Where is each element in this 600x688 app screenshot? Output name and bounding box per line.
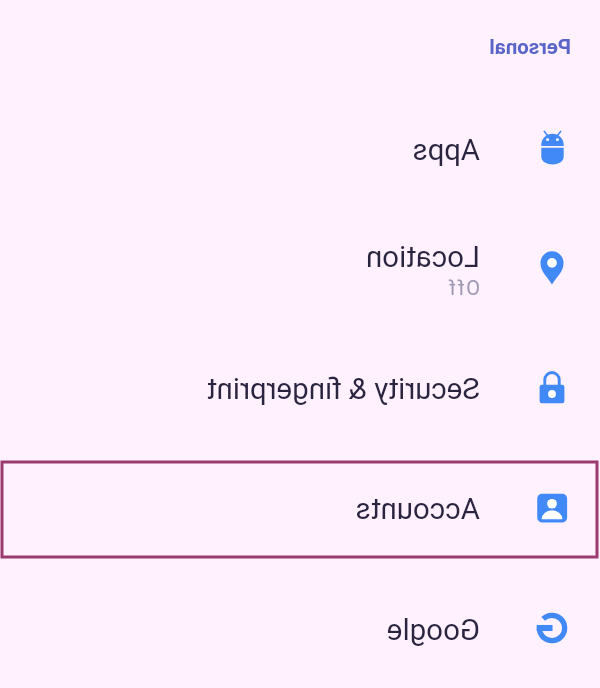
button[interactable]: Security and fingerprint: [0, 343, 600, 431]
other: Accounts: [534, 489, 570, 525]
staticText: Location: [365, 240, 480, 275]
staticText: Accounts: [355, 492, 480, 527]
button[interactable]: Location: [0, 225, 600, 313]
staticText: Off: [446, 276, 480, 299]
button[interactable]: Selected: Accounts: [2, 462, 597, 557]
staticText: Security & fingerprint: [206, 372, 480, 407]
staticText: Personal: [489, 35, 571, 59]
other: Security and fingerprint: [535, 370, 569, 404]
other: Google: [534, 610, 570, 646]
button[interactable]: Google: [0, 584, 600, 672]
other: Apps: [535, 130, 570, 165]
button[interactable]: Accounts: [0, 465, 600, 553]
button[interactable]: Apps: [0, 104, 600, 192]
staticText: Google: [386, 613, 480, 648]
other: Location: [534, 251, 570, 287]
button[interactable]: Personal: [489, 35, 571, 59]
staticText: Apps: [412, 133, 480, 168]
